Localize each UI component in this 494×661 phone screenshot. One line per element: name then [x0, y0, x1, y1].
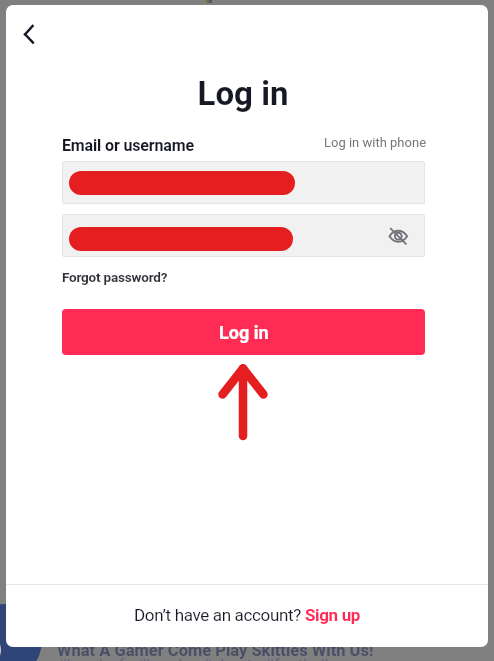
button[interactable]: Sign up — [305, 605, 361, 625]
staticText: Log in — [219, 322, 269, 343]
button[interactable] — [62, 161, 425, 204]
button[interactable]: Show password — [385, 223, 411, 249]
staticText: Forgot password? — [62, 269, 168, 285]
staticText: Sign up — [305, 605, 361, 625]
staticText: Log in with phone — [324, 135, 427, 150]
staticText: Don’t have an account? — [134, 605, 305, 625]
button[interactable]: Email or username — [62, 136, 194, 155]
button[interactable]: Show password — [62, 214, 425, 257]
button[interactable]: Forgot password? — [62, 269, 168, 285]
staticText: What A Gamer Come Play Skittles With Us! — [57, 641, 374, 660]
button[interactable]: Back — [8, 14, 48, 54]
button[interactable]: Log in — [62, 309, 425, 355]
staticText: Log in — [6, 74, 480, 113]
staticText: #burnleyfc #burnley #clarets #football — [57, 656, 329, 661]
button[interactable]: Log in with phone — [324, 135, 427, 150]
